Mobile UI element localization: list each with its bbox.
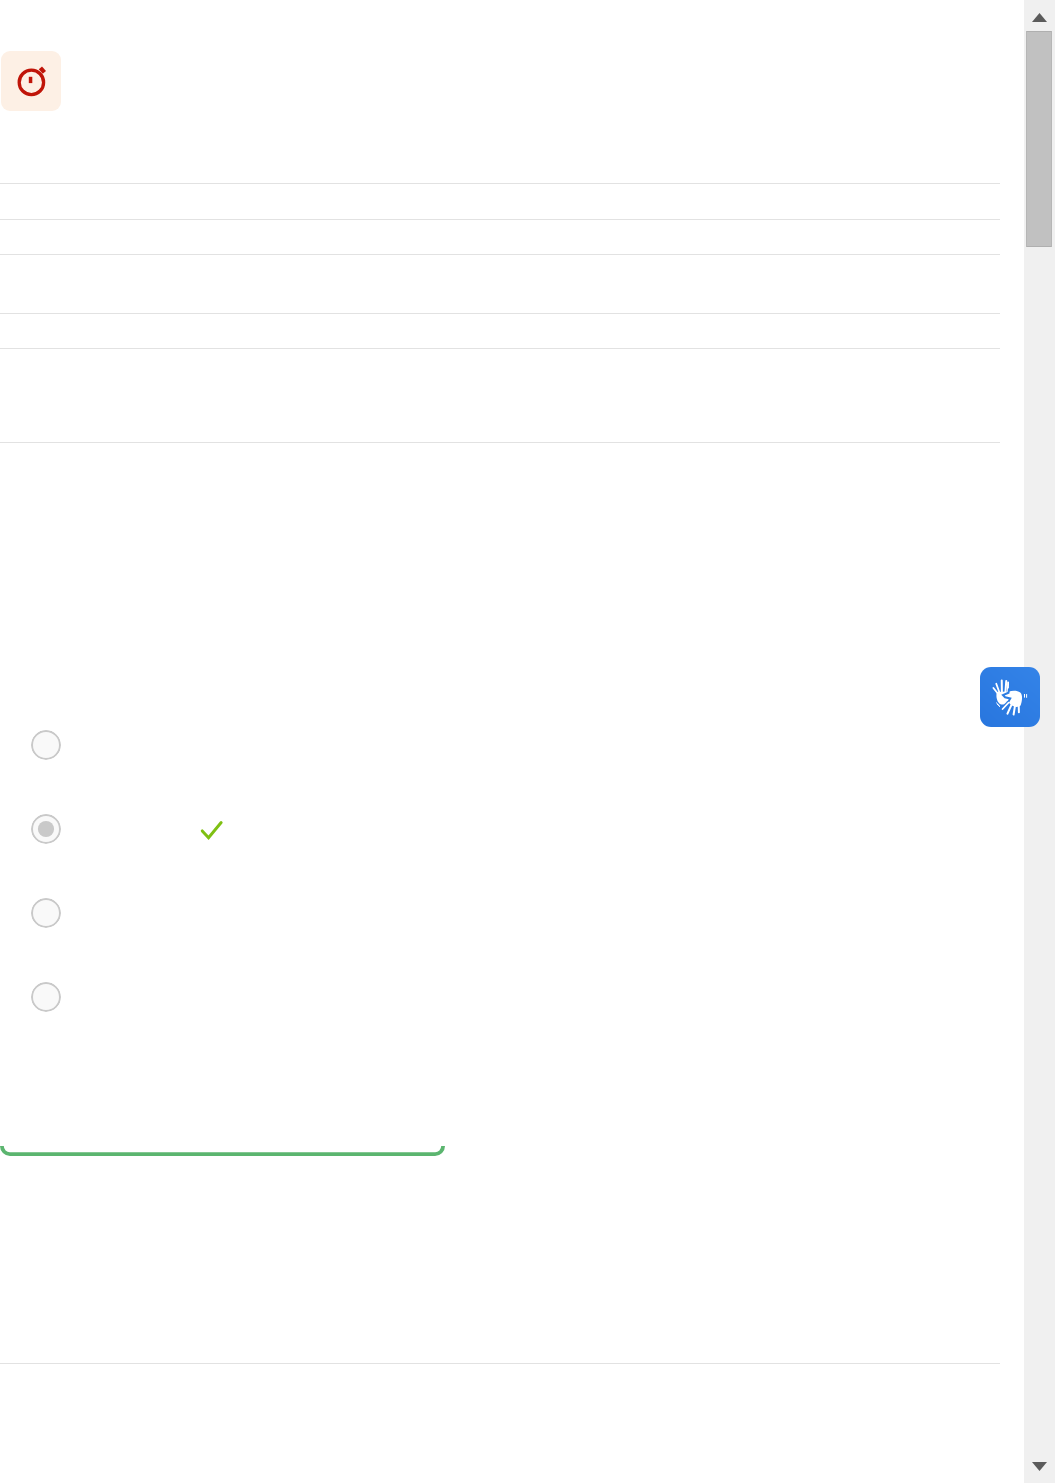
button[interactable]: Scroll down — [1024, 1451, 1055, 1482]
button[interactable]: Option 2 — [31, 814, 61, 844]
button[interactable]: Submit — [0, 1146, 445, 1156]
button[interactable]: Accessibility options — [980, 667, 1040, 727]
button[interactable]: Option 1 — [31, 730, 61, 760]
button[interactable]: Timer — [1, 51, 61, 111]
button[interactable]: Scrollbar thumb — [1026, 31, 1052, 247]
button[interactable]: Option 3 — [31, 898, 61, 928]
button[interactable]: Scroll up — [1024, 2, 1055, 33]
button[interactable]: Option 4 — [31, 982, 61, 1012]
